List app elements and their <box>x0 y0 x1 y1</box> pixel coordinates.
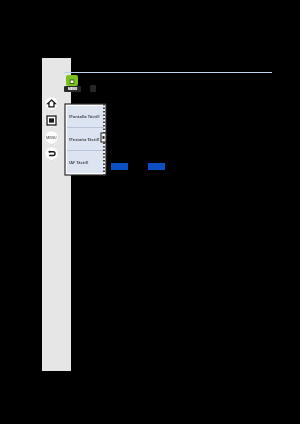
other: Menu <box>46 132 57 143</box>
button[interactable]: [Pestaña Táctil] <box>67 128 104 150</box>
staticText: [Pestaña Táctil] <box>69 137 100 142</box>
staticText: MENU <box>68 87 78 91</box>
other: Back <box>47 149 56 158</box>
staticText: [Pantalla Táctil] <box>69 114 100 119</box>
staticText: MENU <box>46 135 57 140</box>
other: Display <box>47 116 56 125</box>
staticText: [AF Táctil] <box>69 160 89 165</box>
button[interactable]: Menu <box>44 130 59 145</box>
button[interactable]: Back <box>44 146 59 161</box>
button[interactable]: Home <box>44 96 59 111</box>
button[interactable]: Scroll <box>101 133 106 142</box>
other: Home <box>47 99 56 108</box>
button[interactable]: [Pantalla Táctil] <box>67 106 104 127</box>
button[interactable]: MENU <box>64 86 81 92</box>
button[interactable]: Display <box>44 113 59 128</box>
button[interactable]: [AF Táctil] <box>67 151 104 173</box>
